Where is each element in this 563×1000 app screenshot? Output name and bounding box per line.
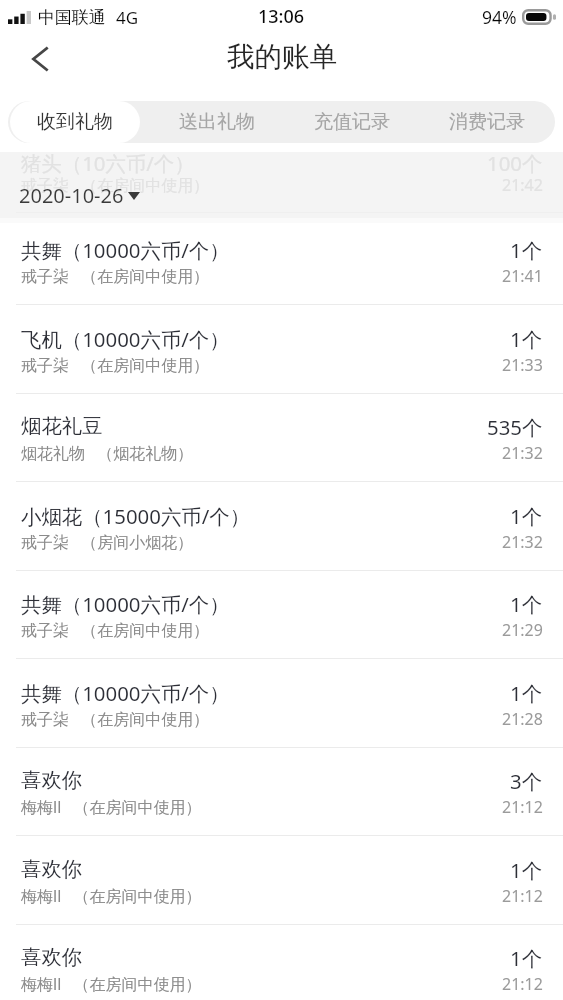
staticText: 戒子柒 （在房间中使用） — [21, 619, 210, 641]
button[interactable]: 共舞（10000六币/个） — [0, 217, 563, 305]
staticText: 21:32 — [502, 442, 543, 464]
staticText: 戒子柒 （在房间中使用） — [21, 174, 210, 196]
staticText: 94% — [482, 5, 517, 29]
button[interactable]: 充值记录 — [302, 101, 402, 143]
staticText: 21:28 — [502, 708, 543, 730]
button[interactable]: 喜欢你 — [0, 837, 563, 925]
staticText: 4G — [116, 6, 139, 29]
staticText: 21:12 — [502, 885, 543, 907]
staticText: 中国联通 — [38, 7, 106, 28]
staticText: 戒子柒 （在房间中使用） — [21, 265, 210, 287]
staticText: 送出礼物 — [179, 110, 255, 134]
staticText: 1个 — [510, 325, 543, 353]
button[interactable]: 收到礼物 — [10, 101, 140, 143]
staticText: 戒子柒 （房间小烟花） — [21, 531, 194, 553]
button[interactable]: 飞机（10000六币/个） — [0, 306, 563, 394]
staticText: 烟花礼豆 — [21, 413, 103, 439]
staticText: 1个 — [510, 590, 543, 618]
staticText: 13:06 — [258, 4, 305, 29]
button[interactable]: 小烟花（15000六币/个） — [0, 483, 563, 571]
staticText: 21:41 — [502, 265, 543, 287]
staticText: 喜欢你 — [21, 767, 83, 793]
staticText: 1个 — [510, 944, 543, 972]
staticText: 1个 — [510, 236, 543, 264]
button[interactable]: 喜欢你 — [0, 925, 563, 1000]
staticText: 21:12 — [502, 973, 543, 995]
staticText: 3个 — [510, 767, 543, 795]
staticText: 535个 — [487, 413, 543, 441]
staticText: 1个 — [510, 856, 543, 884]
staticText: 烟花礼物 （烟花礼物） — [21, 442, 194, 464]
button[interactable]: Back — [18, 37, 62, 81]
staticText: 21:32 — [502, 531, 543, 553]
staticText: 收到礼物 — [37, 110, 113, 134]
staticText: 戒子柒 （在房间中使用） — [21, 354, 210, 376]
button[interactable]: 送出礼物 — [167, 101, 267, 143]
staticText: 21:12 — [502, 796, 543, 818]
staticText: 共舞（10000六币/个） — [21, 236, 230, 264]
button[interactable]: Select date 2020-10-26 — [19, 182, 140, 209]
staticText: 1个 — [510, 679, 543, 707]
staticText: 1个 — [510, 502, 543, 530]
staticText: 21:33 — [502, 354, 543, 376]
staticText: 100个 — [487, 149, 543, 177]
staticText: 充值记录 — [314, 110, 390, 134]
staticText: 猪头（10六币/个） — [21, 149, 195, 177]
staticText: 梅梅ll （在房间中使用） — [21, 796, 202, 818]
button[interactable]: 烟花礼豆 — [0, 394, 563, 482]
staticText: 飞机（10000六币/个） — [21, 325, 230, 353]
staticText: 共舞（10000六币/个） — [21, 590, 230, 618]
staticText: 戒子柒 （在房间中使用） — [21, 708, 210, 730]
staticText: 梅梅ll （在房间中使用） — [21, 885, 202, 907]
staticText: 共舞（10000六币/个） — [21, 679, 230, 707]
staticText: 消费记录 — [449, 110, 525, 134]
staticText: 喜欢你 — [21, 944, 83, 970]
staticText: 梅梅ll （在房间中使用） — [21, 973, 202, 995]
staticText: 21:29 — [502, 619, 543, 641]
button[interactable]: 消费记录 — [437, 101, 537, 143]
button[interactable]: 共舞（10000六币/个） — [0, 571, 563, 659]
staticText: 我的账单 — [227, 40, 337, 75]
staticText: 小烟花（15000六币/个） — [21, 502, 251, 530]
staticText: 2020-10-26 — [19, 182, 124, 209]
button[interactable]: 喜欢你 — [0, 748, 563, 836]
staticText: 21:42 — [502, 174, 543, 196]
staticText: 喜欢你 — [21, 856, 83, 882]
button[interactable]: 共舞（10000六币/个） — [0, 660, 563, 748]
